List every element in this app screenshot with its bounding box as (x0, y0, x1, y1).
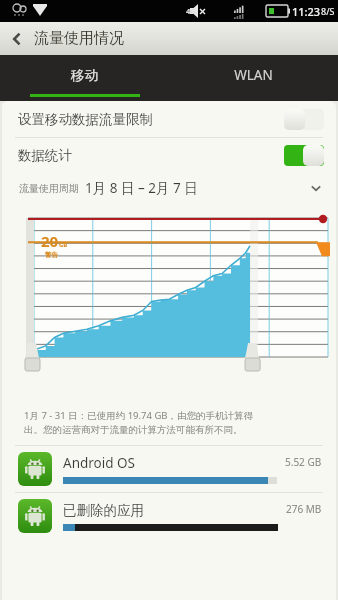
staticText: 已删除的应用 (63, 502, 144, 519)
staticText: 8/S (321, 5, 335, 17)
staticText: 流量使用周期 (19, 182, 79, 195)
button[interactable] (284, 109, 324, 130)
staticText: 流量使用情况 (34, 29, 124, 48)
staticText: 1月 7 - 31 日：已使用约 19.74 GB，由您的手机计算得 出。您的运… (24, 409, 253, 436)
button[interactable]: WLAN (169, 55, 338, 101)
staticText: 4G (186, 6, 196, 16)
button[interactable]: 流量使用周期 (2, 172, 336, 204)
staticText: 276 MB (286, 502, 322, 516)
staticText: Android OS (63, 454, 135, 472)
staticText: 11:23 (292, 4, 321, 19)
staticText: 设置移动数据流量限制 (18, 111, 284, 128)
button[interactable]: 移动 (0, 55, 169, 101)
button[interactable] (284, 145, 324, 166)
button[interactable]: 设置移动数据流量限制 (2, 101, 336, 137)
staticText: 5.52 GB (285, 455, 322, 469)
button[interactable]: 已删除的应用 (2, 493, 336, 539)
button[interactable]: 数据统计 (2, 138, 336, 172)
button[interactable]: Back (0, 22, 34, 55)
staticText: GB (59, 241, 68, 249)
button[interactable]: Android OS (2, 446, 336, 492)
staticText: 警告 (45, 251, 58, 259)
staticText: WLAN (234, 66, 273, 84)
staticText: 1月 8 日 – 2月 7 日 (85, 179, 198, 197)
staticText: 20 (41, 231, 59, 251)
staticText: 移动 (71, 67, 98, 84)
staticText: 数据统计 (18, 147, 284, 164)
